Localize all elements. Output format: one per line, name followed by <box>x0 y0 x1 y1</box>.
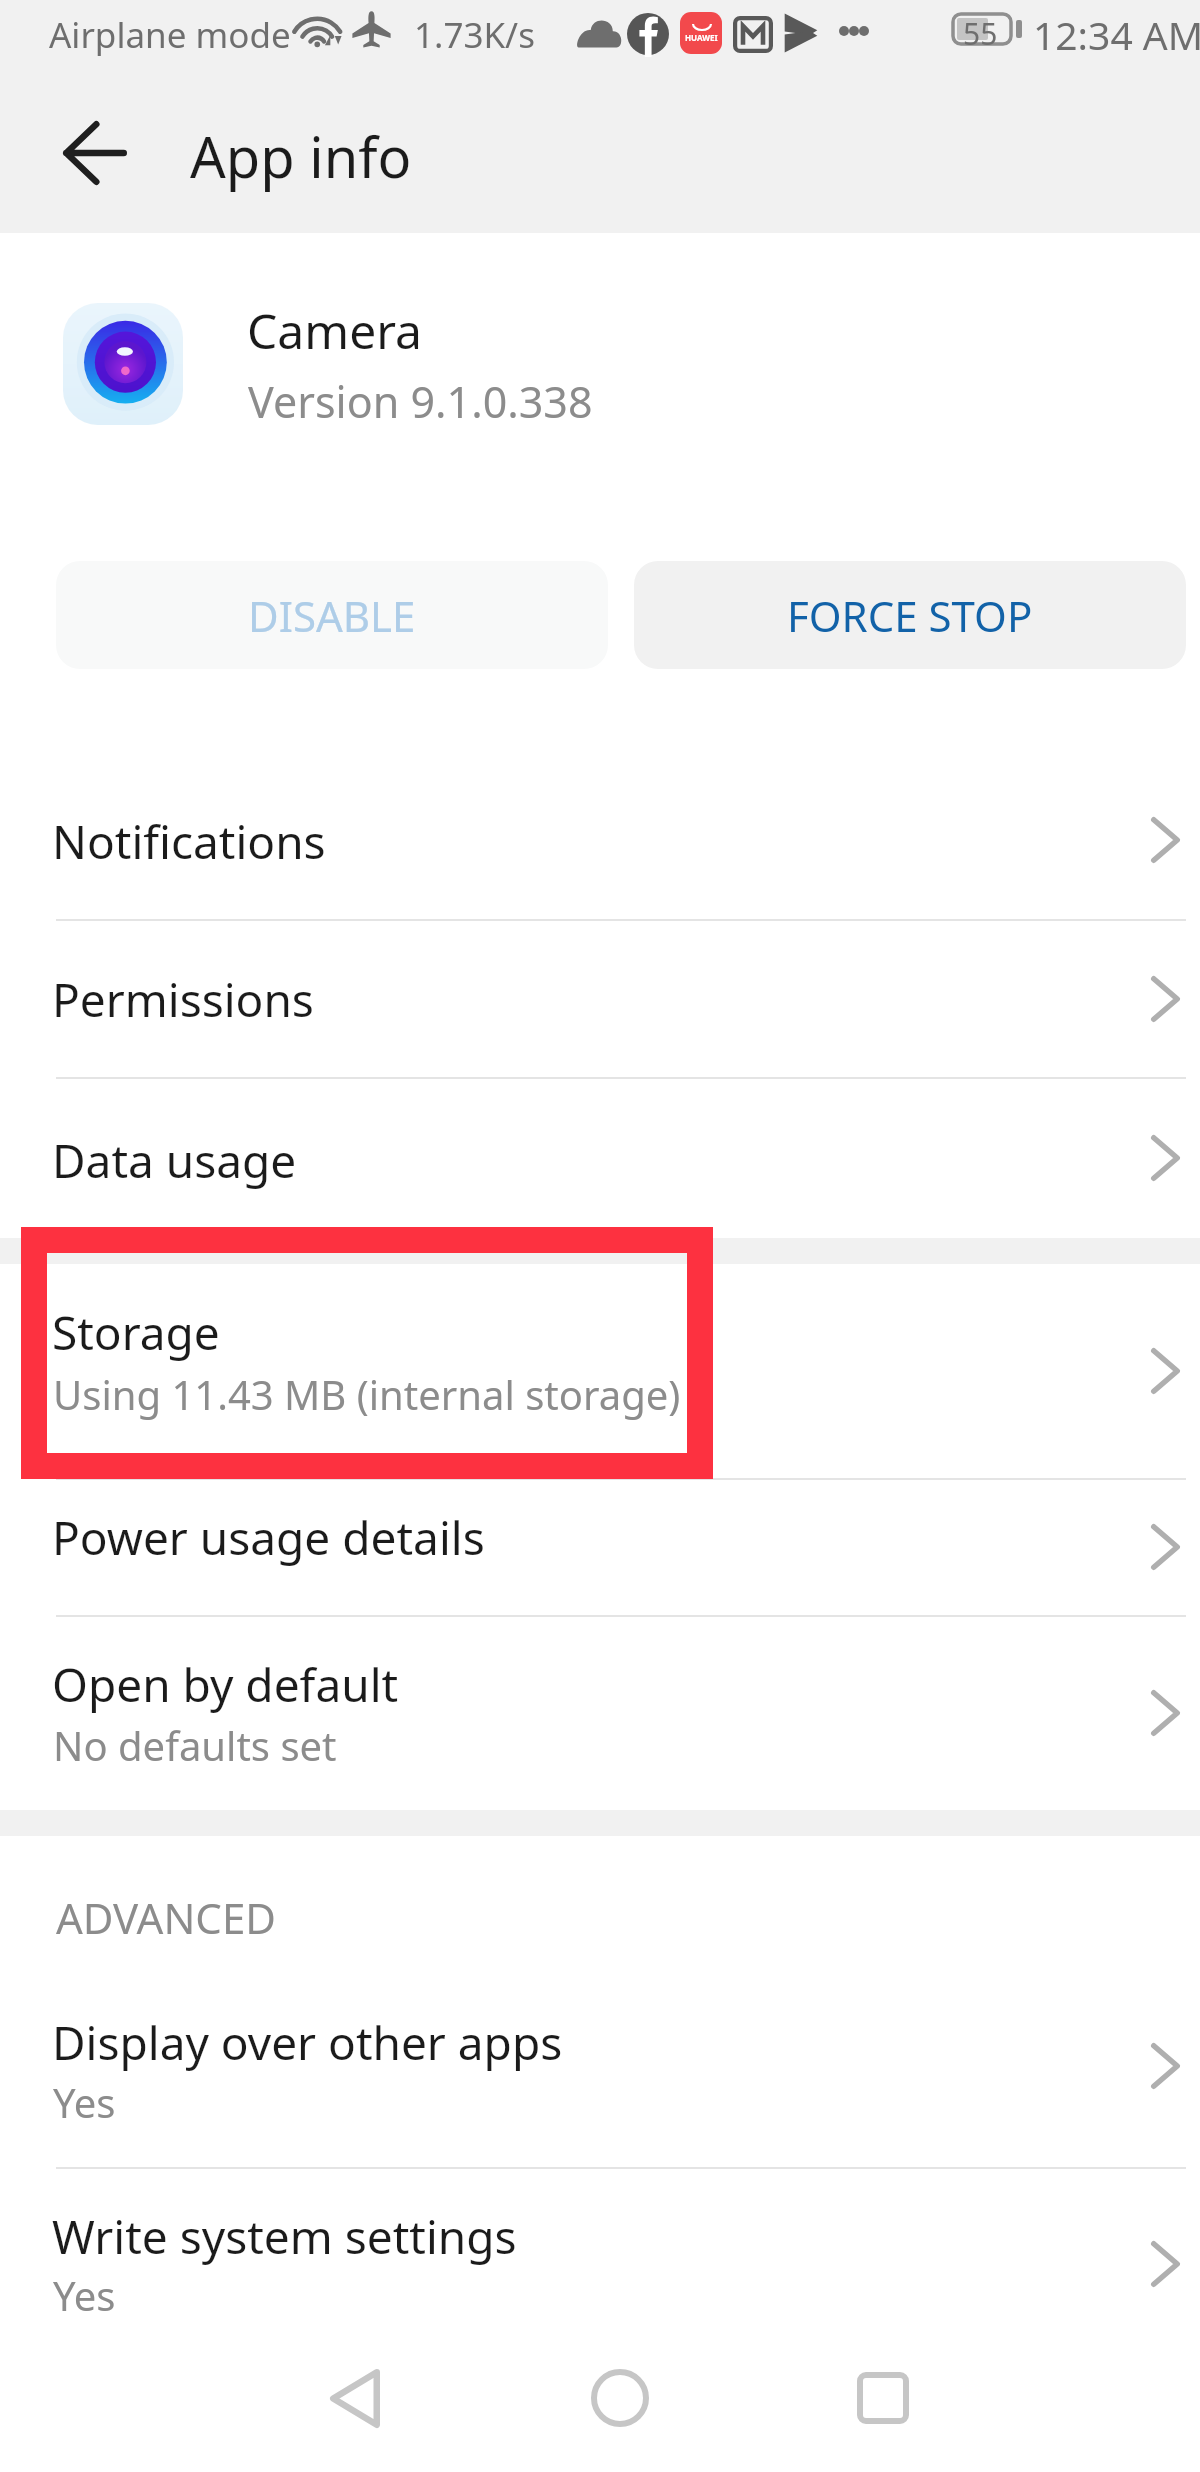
button[interactable] <box>0 1480 1200 1615</box>
staticText: Display over other apps <box>52 2011 563 2074</box>
staticText: Power usage details <box>52 1506 485 1569</box>
button[interactable]: Back <box>295 2338 415 2458</box>
button[interactable] <box>0 1264 1200 1478</box>
staticText: ADVANCED <box>56 1889 276 1946</box>
button[interactable] <box>0 921 1200 1077</box>
button[interactable] <box>0 1079 1200 1238</box>
button[interactable] <box>0 761 1200 919</box>
button[interactable]: Recents <box>823 2338 943 2458</box>
staticText: Yes <box>53 2075 116 2129</box>
staticText: Yes <box>53 2268 116 2322</box>
staticText: Version 9.1.0.338 <box>248 372 593 431</box>
staticText: Notifications <box>52 810 326 873</box>
staticText: Airplane mode <box>49 11 291 59</box>
staticText: Camera <box>247 298 423 363</box>
staticText: DISABLE <box>248 587 416 644</box>
staticText: Storage <box>52 1301 220 1364</box>
button[interactable]: Back <box>40 98 150 208</box>
staticText: Write system settings <box>52 2205 517 2268</box>
button[interactable]: DISABLE <box>56 561 608 669</box>
button[interactable] <box>0 2168 1200 2360</box>
button[interactable]: FORCE STOP <box>634 561 1186 669</box>
staticText: 55 <box>963 13 998 47</box>
button[interactable]: Home <box>560 2338 680 2458</box>
staticText: App info <box>190 118 412 194</box>
staticText: Using 11.43 MB (internal storage) <box>53 1367 681 1421</box>
staticText: 1.73K/s <box>414 11 535 59</box>
button[interactable] <box>0 1617 1200 1810</box>
staticText: Open by default <box>52 1653 399 1716</box>
staticText: HUAWEI <box>685 32 718 43</box>
staticText: Permissions <box>52 968 314 1031</box>
staticText: No defaults set <box>53 1718 337 1772</box>
staticText: 12:34 AM <box>1033 8 1200 61</box>
button[interactable] <box>0 1965 1200 2167</box>
staticText: FORCE STOP <box>787 587 1033 644</box>
staticText: Data usage <box>52 1129 297 1192</box>
